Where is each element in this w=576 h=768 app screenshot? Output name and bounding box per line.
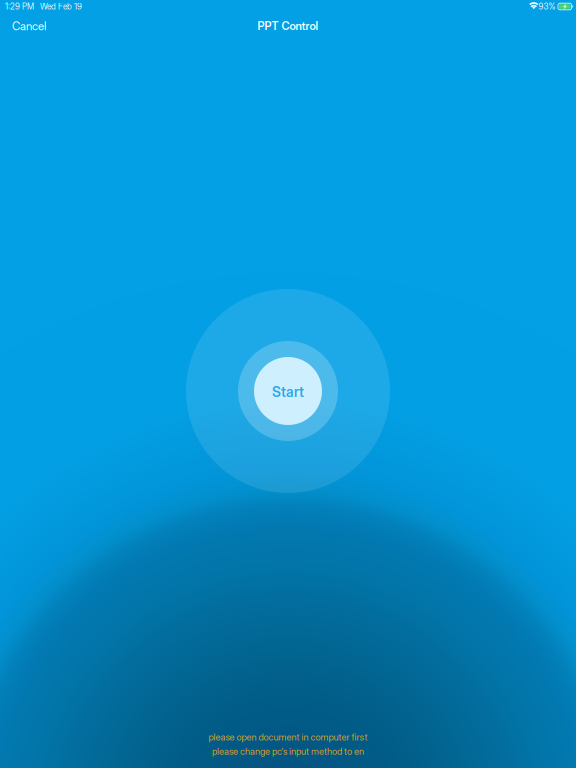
button[interactable]: Cancel	[0, 11, 58, 41]
button[interactable]: Start	[186, 289, 390, 493]
staticText: Wed Feb 19	[40, 1, 82, 11]
staticText: 1:29 PM	[5, 1, 34, 11]
staticText: PPT Control	[257, 19, 318, 33]
staticText: please open document in computer first	[208, 731, 367, 743]
staticText: 93%	[538, 1, 555, 11]
staticText: Cancel	[12, 19, 46, 33]
staticText: please change pc's input method to en	[212, 746, 364, 757]
staticText: Start	[272, 384, 304, 400]
